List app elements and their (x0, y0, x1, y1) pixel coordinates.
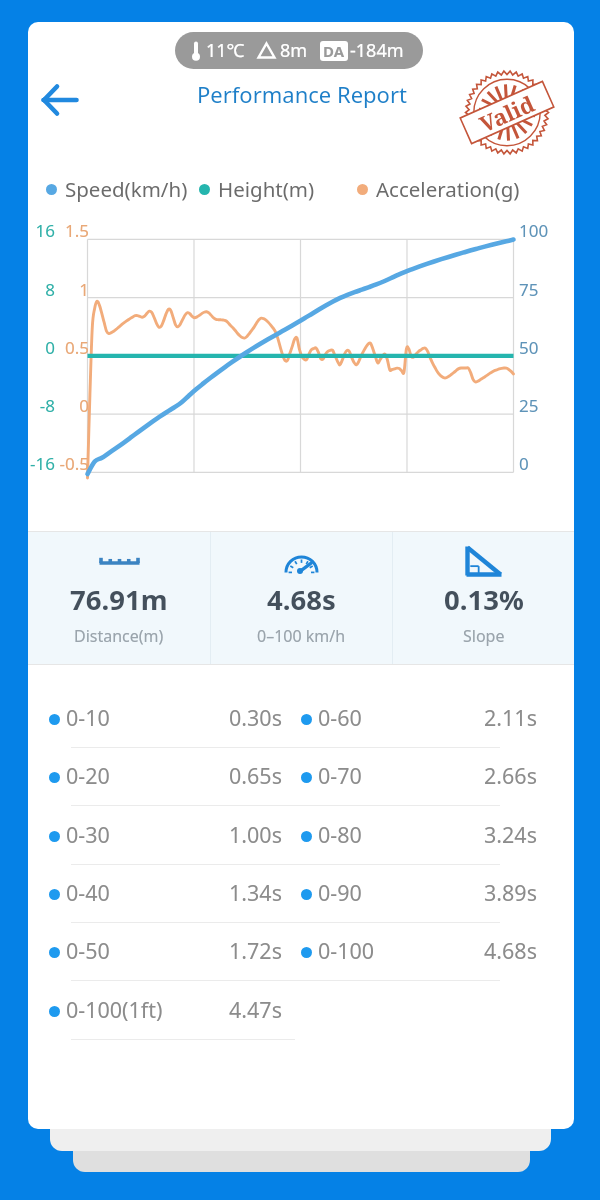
button[interactable]: 4.68s (211, 532, 392, 664)
button[interactable]: 0-80 (301, 812, 537, 860)
button[interactable]: 0-70 (301, 753, 537, 801)
staticText: 0-50 (66, 936, 110, 965)
staticText: Slope (463, 625, 505, 647)
staticText: 0-20 (66, 761, 110, 790)
button[interactable]: 0-10 (49, 695, 282, 743)
staticText: Distance(m) (74, 625, 164, 647)
staticText: 0-30 (66, 820, 110, 849)
staticText: 0 (35, 394, 89, 417)
button[interactable]: Back (32, 76, 86, 124)
staticText: -8 (11, 394, 55, 417)
staticText: Speed(km/h) (65, 175, 188, 203)
staticText: 3.89s (484, 878, 537, 907)
button[interactable]: 0-30 (49, 812, 282, 860)
staticText: 0 (519, 452, 569, 475)
staticText: 0.30s (229, 703, 282, 732)
staticText: 4.68s (484, 936, 537, 965)
staticText: 0-10 (66, 703, 110, 732)
staticText: 75 (519, 278, 569, 301)
staticText: 0 (11, 336, 55, 359)
button[interactable]: 76.91m (28, 532, 210, 664)
staticText: 0–100 km/h (257, 625, 346, 647)
staticText: 2.11s (484, 703, 537, 732)
staticText: 11℃ (206, 38, 245, 63)
button[interactable]: 0-60 (301, 695, 537, 743)
staticText: 4.47s (229, 995, 282, 1024)
staticText: 1.72s (229, 936, 282, 965)
staticText: 2.66s (484, 761, 537, 790)
staticText: 1.5 (35, 219, 89, 242)
other: Valid stamp (455, 60, 560, 165)
staticText: -0.5 (35, 452, 89, 475)
staticText: 0-90 (318, 878, 362, 907)
staticText: Valid (474, 87, 540, 138)
staticText: 0-100 (318, 936, 375, 965)
staticText: 1 (35, 278, 89, 301)
staticText: 0.65s (229, 761, 282, 790)
staticText: Height(m) (218, 175, 315, 203)
staticText: 3.24s (484, 820, 537, 849)
staticText: 76.91m (70, 581, 168, 618)
staticText: 8m (280, 38, 308, 63)
staticText: 25 (519, 394, 569, 417)
staticText: 0-100(1ft) (66, 995, 163, 1024)
staticText: 0-80 (318, 820, 362, 849)
staticText: 0-40 (66, 878, 110, 907)
staticText: 0-60 (318, 703, 362, 732)
staticText: 16 (11, 219, 55, 242)
button[interactable]: 11℃ (175, 32, 423, 69)
staticText: -184m (350, 38, 404, 63)
staticText: 0-70 (318, 761, 362, 790)
button[interactable]: 0-40 (49, 870, 282, 918)
staticText: 0.5 (35, 336, 89, 359)
staticText: Performance Report (197, 79, 407, 109)
staticText: DA (323, 41, 345, 61)
staticText: 50 (519, 336, 569, 359)
staticText: 4.68s (267, 581, 336, 618)
staticText: 0.13% (444, 581, 524, 618)
staticText: -16 (11, 452, 55, 475)
button[interactable]: 0-50 (49, 928, 282, 976)
button[interactable]: 0-90 (301, 870, 537, 918)
staticText: 8 (11, 278, 55, 301)
button[interactable]: 0-20 (49, 753, 282, 801)
staticText: Acceleration(g) (376, 175, 520, 203)
staticText: 100 (519, 219, 569, 242)
staticText: 1.00s (229, 820, 282, 849)
button[interactable]: 0.13% (393, 532, 574, 664)
button[interactable]: 0-100(1ft) (49, 987, 282, 1035)
staticText: 1.34s (229, 878, 282, 907)
button[interactable]: 0-100 (301, 928, 537, 976)
